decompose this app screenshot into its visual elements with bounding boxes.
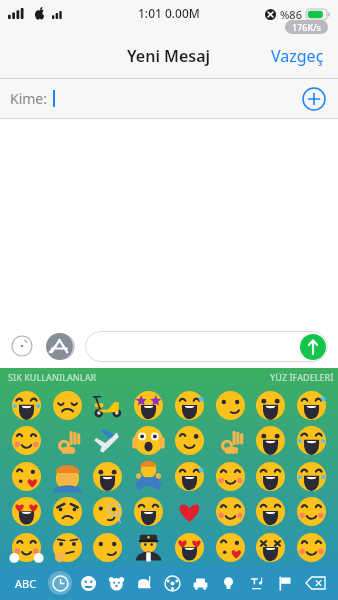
button[interactable]: Semboller: [242, 566, 270, 600]
button[interactable]: ABC: [6, 566, 46, 600]
button[interactable]: Emoji: [10, 531, 43, 564]
button[interactable]: Kamera: [10, 334, 34, 358]
button[interactable]: Seyahat: [186, 566, 214, 600]
button[interactable]: Sil: [298, 566, 332, 600]
button[interactable]: Gönder: [300, 334, 326, 360]
button[interactable]: Emoji: [51, 460, 84, 493]
button[interactable]: Vazgeç: [257, 35, 338, 77]
button[interactable]: Emoji: [91, 531, 124, 564]
button[interactable]: Emoji: [295, 460, 328, 493]
staticText: %86: [280, 7, 302, 22]
button[interactable]: Emoji: [51, 531, 84, 564]
button[interactable]: Yiyecek: [130, 566, 158, 600]
staticText: Vazgeç: [271, 45, 324, 67]
button[interactable]: Gönder: [85, 331, 328, 362]
button[interactable]: Emoji: [173, 460, 206, 493]
staticText: 176K/s: [292, 21, 321, 33]
button[interactable]: Uygulamalar: [46, 333, 73, 360]
button[interactable]: Emoji: [295, 495, 328, 528]
button[interactable]: Emoji: [132, 424, 165, 457]
button[interactable]: Emoji: [173, 424, 206, 457]
button[interactable]: Emoji: [254, 495, 287, 528]
button[interactable]: Emoji: [214, 460, 247, 493]
button[interactable]: Emoji: [10, 424, 43, 457]
button[interactable]: Emoji: [214, 424, 247, 457]
button[interactable]: Emoji: [51, 495, 84, 528]
button[interactable]: Emoji: [214, 531, 247, 564]
button[interactable]: Emoji: [91, 424, 124, 457]
button[interactable]: Etkinlik: [158, 566, 186, 600]
button[interactable]: Emoji: [295, 389, 328, 422]
button[interactable]: Emoji: [214, 495, 247, 528]
button[interactable]: Emoji: [91, 460, 124, 493]
staticText: Kime:: [10, 89, 48, 108]
button[interactable]: Emoji: [173, 389, 206, 422]
button[interactable]: Emoji: [295, 531, 328, 564]
staticText: SIK KULLANILANLAR: [8, 371, 97, 383]
button[interactable]: Sık kullanılanlar: [46, 566, 74, 600]
button[interactable]: Emoji: [51, 389, 84, 422]
button[interactable]: Emoji: [132, 495, 165, 528]
button[interactable]: Emoji: [91, 389, 124, 422]
button[interactable]: Emoji: [254, 531, 287, 564]
button[interactable]: Emoji: [173, 495, 206, 528]
button[interactable]: Kişi ekle: [302, 87, 326, 111]
button[interactable]: Nesneler: [214, 566, 242, 600]
button[interactable]: Emoji: [254, 460, 287, 493]
staticText: Yeni Mesaj: [127, 45, 211, 67]
button[interactable]: Hayvanlar: [102, 566, 130, 600]
button[interactable]: Emoji: [132, 389, 165, 422]
button[interactable]: Bayraklar: [270, 566, 298, 600]
staticText: ABC: [15, 576, 37, 591]
staticText: 1:01 0.00M: [138, 5, 200, 21]
button[interactable]: Emoji: [254, 389, 287, 422]
button[interactable]: Emoji: [214, 389, 247, 422]
button[interactable]: Emoji: [91, 495, 124, 528]
button[interactable]: Emoji: [132, 531, 165, 564]
button[interactable]: Emoji: [254, 424, 287, 457]
button[interactable]: Emoji: [173, 531, 206, 564]
button[interactable]: Emoji: [10, 460, 43, 493]
button[interactable]: Emoji: [295, 424, 328, 457]
button[interactable]: Emoji: [10, 389, 43, 422]
button[interactable]: Yüz ifadeleri: [74, 566, 102, 600]
staticText: YÜZ İFADELERİ: [270, 371, 334, 383]
button[interactable]: Emoji: [51, 424, 84, 457]
button[interactable]: Emoji: [10, 495, 43, 528]
button[interactable]: Emoji: [132, 460, 165, 493]
